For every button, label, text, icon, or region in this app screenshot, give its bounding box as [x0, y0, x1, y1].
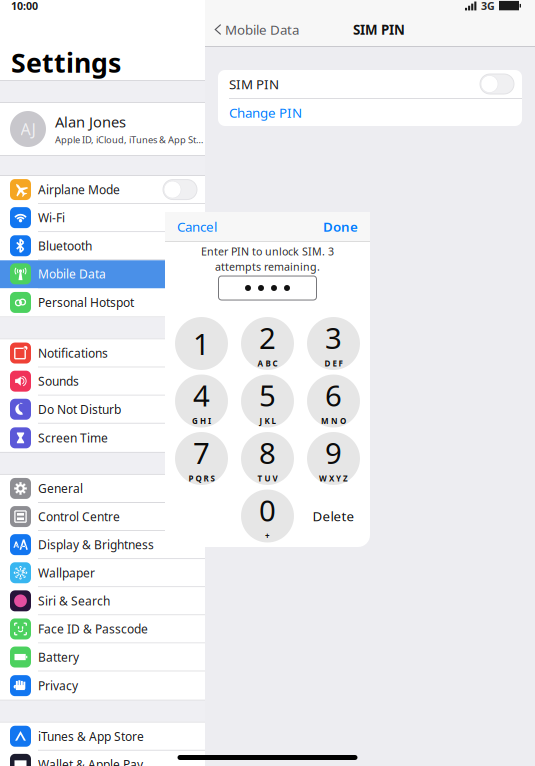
button[interactable]: Sounds: [0, 368, 205, 396]
staticText: Done: [323, 218, 358, 235]
staticText: Personal Hotspot: [38, 294, 134, 310]
button[interactable]: Face ID & Passcode: [0, 615, 205, 643]
staticText: Mobile Data: [225, 21, 299, 38]
button[interactable]: Wi-Fi: [0, 204, 205, 232]
button[interactable]: Siri & Search: [0, 587, 205, 615]
staticText: Alan Jones: [55, 112, 126, 132]
staticText: 6: [325, 376, 342, 415]
staticText: J K L: [259, 416, 275, 426]
staticText: +: [265, 531, 270, 541]
button[interactable]: Personal Hotspot: [0, 288, 205, 316]
staticText: D E F: [324, 358, 342, 369]
staticText: Wi-Fi: [38, 210, 65, 226]
button[interactable]: Notifications: [0, 339, 205, 368]
staticText: General: [38, 480, 83, 496]
staticText: G H I: [192, 416, 211, 426]
button[interactable]: Wallpaper: [0, 559, 205, 587]
button[interactable]: 2: [241, 317, 294, 370]
button[interactable]: General: [0, 475, 205, 503]
staticText: Airplane Mode: [38, 182, 120, 197]
staticText: Sounds: [38, 373, 79, 389]
staticText: Enter PIN to unlock SIM. 3: [201, 244, 334, 258]
staticText: SIM PIN: [229, 75, 279, 93]
staticText: 8: [259, 433, 276, 472]
staticText: Face ID & Passcode: [38, 621, 148, 637]
button[interactable]: Airplane Mode: [0, 176, 205, 204]
staticText: 4: [193, 376, 210, 415]
staticText: Battery: [38, 649, 79, 665]
button[interactable]: 9: [307, 432, 360, 485]
staticText: AJ: [20, 118, 35, 140]
staticText: T U V: [257, 473, 277, 484]
button[interactable]: 5: [241, 374, 294, 427]
staticText: 1: [193, 324, 210, 363]
staticText: Bluetooth: [38, 238, 92, 254]
button[interactable]: Wallet & Apple Pay: [0, 751, 205, 766]
staticText: Screen Time: [38, 430, 108, 446]
staticText: 10:00: [11, 0, 38, 13]
button[interactable]: Delete: [307, 489, 360, 542]
staticText: SIM PIN: [353, 21, 405, 38]
staticText: Wallpaper: [38, 565, 95, 581]
button[interactable]: Mobile Data: [0, 260, 205, 288]
staticText: iTunes & App Store: [38, 728, 144, 744]
staticText: Notifications: [38, 345, 108, 361]
button[interactable]: Battery: [0, 643, 205, 672]
staticText: Siri & Search: [38, 593, 110, 609]
button[interactable]: 8: [241, 432, 294, 485]
staticText: Privacy: [38, 678, 78, 694]
button[interactable]: Screen Time: [0, 424, 205, 452]
staticText: 7: [193, 433, 210, 472]
button[interactable]: 6: [307, 374, 360, 427]
button[interactable]: iTunes & App Store: [0, 723, 205, 751]
staticText: attempts remaining.: [215, 259, 320, 274]
staticText: Apple ID, iCloud, iTunes & App St…: [55, 133, 203, 146]
staticText: Do Not Disturb: [38, 401, 121, 417]
button[interactable]: 4: [175, 374, 228, 427]
staticText: 3: [325, 318, 342, 357]
button[interactable]: 7: [175, 432, 228, 485]
staticText: W X Y Z: [319, 473, 348, 484]
staticText: P Q R S: [188, 473, 214, 484]
staticText: Change PIN: [229, 104, 302, 121]
button[interactable]: Display & Brightness: [0, 531, 205, 559]
button[interactable]: 3: [307, 317, 360, 370]
button[interactable]: Change PIN: [218, 99, 522, 126]
staticText: Delete: [312, 507, 354, 525]
staticText: Cancel: [177, 218, 217, 235]
button[interactable]: Bluetooth: [0, 232, 205, 260]
staticText: 5: [259, 376, 276, 415]
button[interactable]: Do Not Disturb: [0, 396, 205, 424]
staticText: Control Centre: [38, 509, 120, 524]
staticText: 3G: [481, 0, 495, 13]
staticText: 2: [259, 318, 276, 357]
button[interactable]: Mobile Data: [205, 13, 299, 46]
button[interactable]: Cancel: [165, 212, 217, 241]
button[interactable]: Done: [323, 212, 370, 241]
button[interactable]: 0: [241, 489, 294, 542]
staticText: Wallet & Apple Pay: [38, 756, 143, 766]
staticText: Display & Brightness: [38, 537, 154, 553]
staticText: Settings: [11, 45, 121, 80]
staticText: 0: [259, 491, 276, 530]
button[interactable]: Privacy: [0, 672, 205, 700]
staticText: Mobile Data: [38, 266, 106, 282]
staticText: 9: [325, 433, 342, 472]
button[interactable]: Control Centre: [0, 503, 205, 531]
button[interactable]: AJ: [0, 103, 205, 155]
staticText: A B C: [257, 358, 277, 369]
button[interactable]: 1: [175, 317, 228, 370]
staticText: M N O: [321, 416, 346, 426]
